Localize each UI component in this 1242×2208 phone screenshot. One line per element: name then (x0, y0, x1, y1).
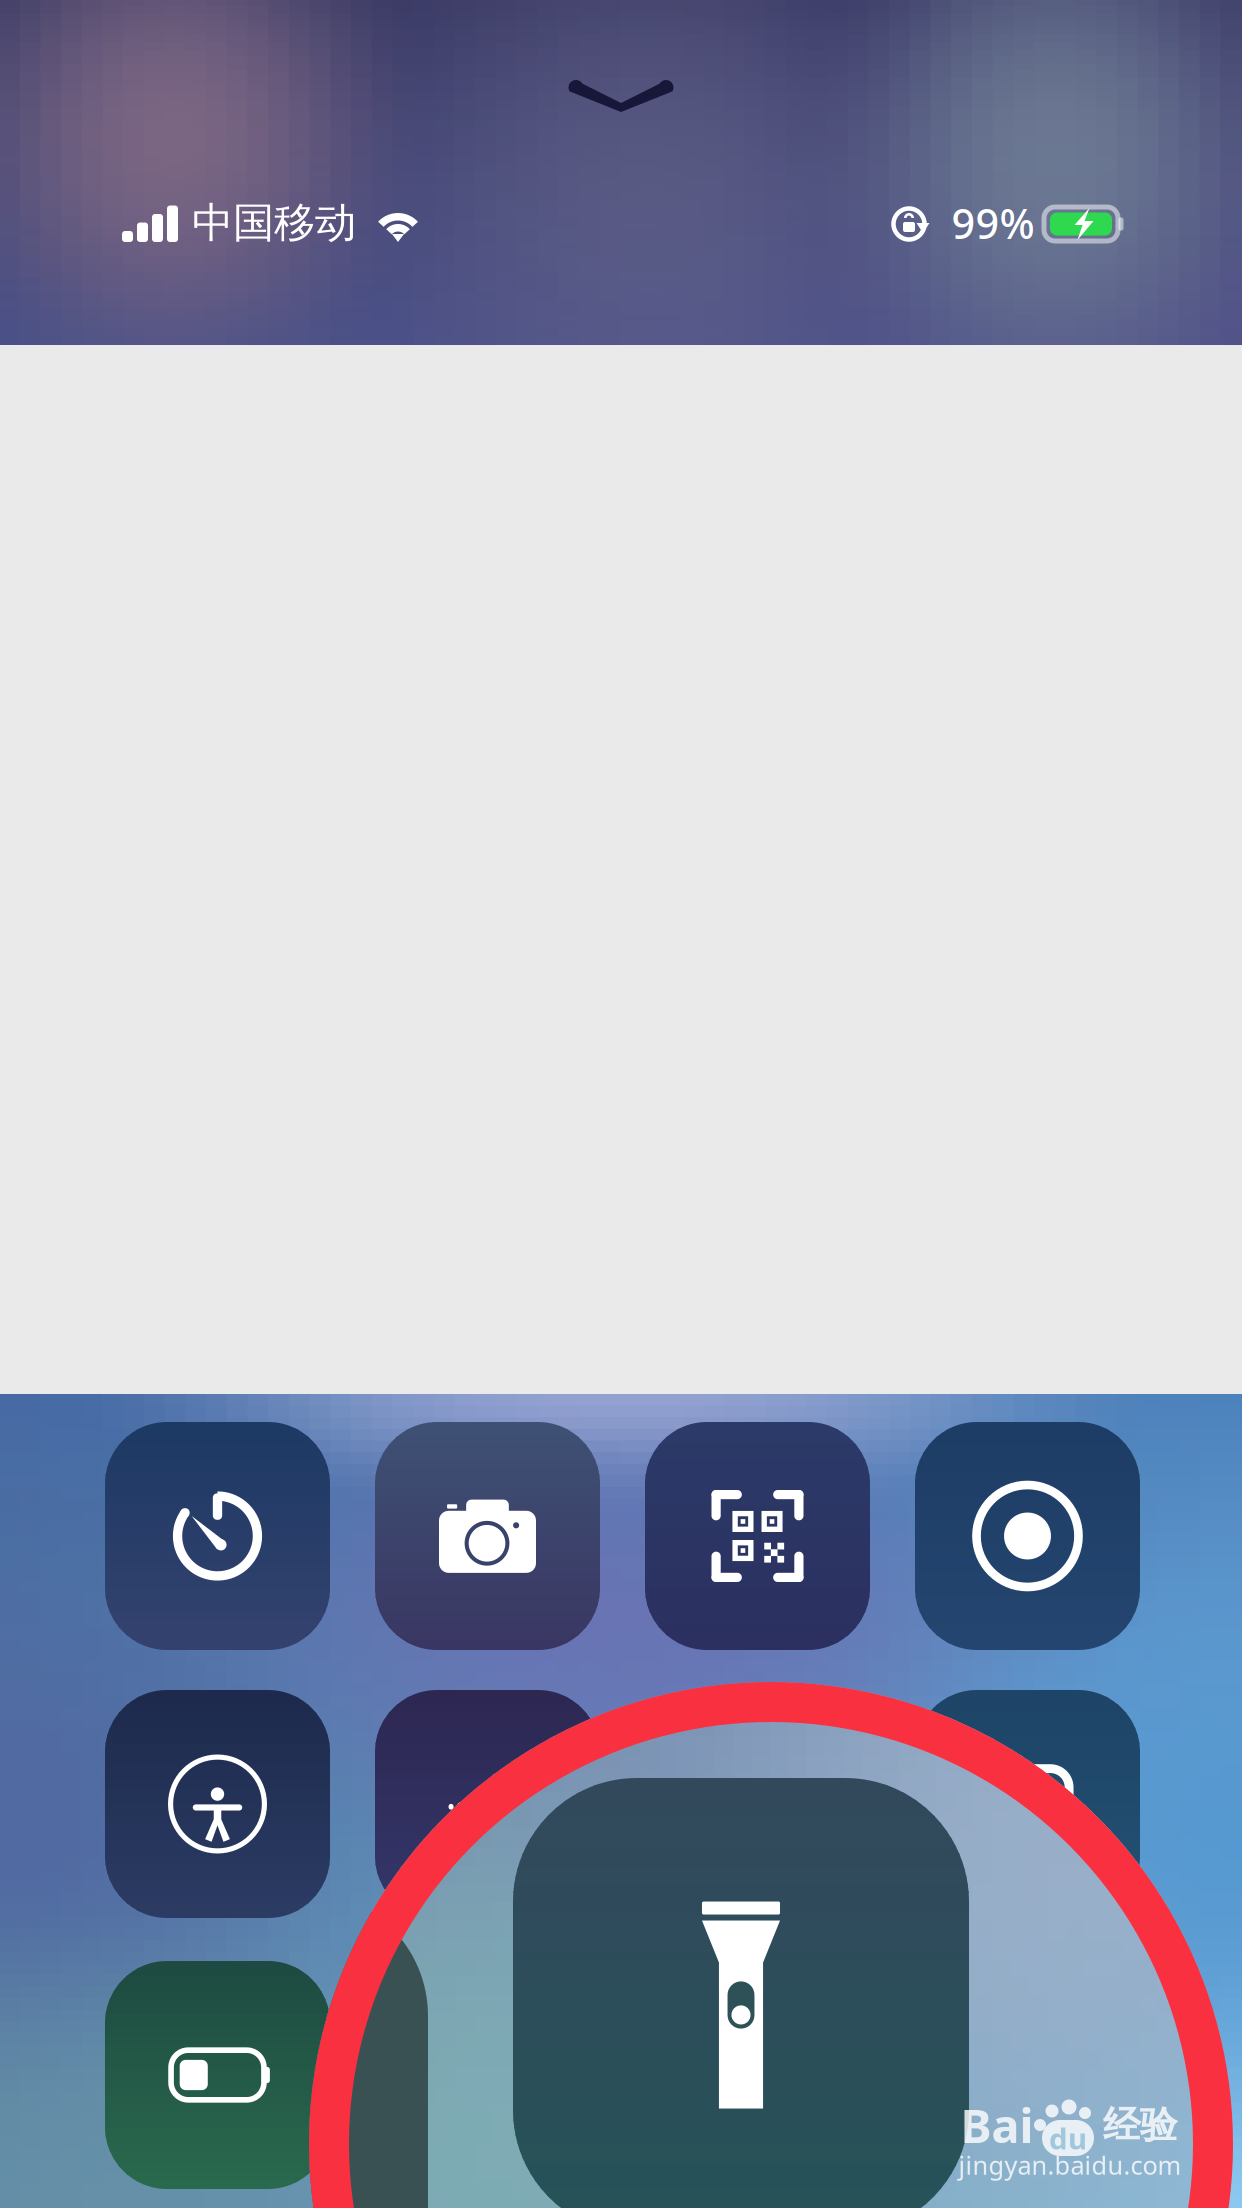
button[interactable]: Notes (915, 1961, 1140, 2189)
staticText: Bai (960, 2094, 1033, 2156)
staticText: 经验 (1103, 2102, 1177, 2148)
button[interactable]: Timer (105, 1422, 330, 1650)
staticText: 中国移动 (192, 198, 356, 248)
button[interactable]: Hearing (375, 1690, 600, 1918)
staticText: jingyan.baidu.com (958, 2148, 1181, 2182)
staticText: 99% (951, 196, 1034, 250)
button[interactable]: Flashlight (645, 1690, 870, 1918)
button[interactable]: Code Scanner (645, 1422, 870, 1650)
button[interactable]: Screen Mirroring (915, 1690, 1140, 1918)
button[interactable]: Accessibility (105, 1690, 330, 1918)
button[interactable]: Camera (375, 1422, 600, 1650)
button[interactable]: Focus (645, 1961, 870, 2189)
button[interactable]: Low Power Mode (105, 1961, 330, 2189)
button[interactable]: Screen Recording (915, 1422, 1140, 1650)
staticText: du (1049, 2118, 1087, 2157)
button[interactable]: Dark Mode (375, 1961, 600, 2189)
